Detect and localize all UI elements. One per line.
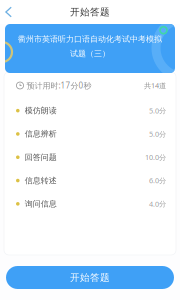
button[interactable]: Back bbox=[0, 1, 20, 22]
staticText: 10.0分 bbox=[145, 152, 166, 162]
staticText: 4.0分 bbox=[149, 199, 166, 209]
staticText: 预计用时:17分0秒 bbox=[27, 80, 92, 91]
staticText: 询问信息 bbox=[25, 199, 57, 209]
staticText: 共14道 bbox=[144, 81, 166, 90]
staticText: 5.0分 bbox=[149, 106, 166, 115]
button[interactable]: 询问信息 bbox=[4, 192, 176, 215]
button[interactable]: 信息辨析 bbox=[4, 122, 176, 146]
staticText: 模仿朗读 bbox=[25, 106, 57, 116]
button[interactable]: 信息转述 bbox=[4, 169, 176, 192]
staticText: 6.0分 bbox=[149, 176, 166, 185]
staticText: 信息辨析 bbox=[25, 129, 57, 139]
staticText: 开始答题 bbox=[70, 6, 110, 18]
button[interactable]: 回答问题 bbox=[4, 146, 176, 169]
staticText: 5.0分 bbox=[149, 129, 166, 139]
staticText: 开始答题 bbox=[70, 271, 110, 284]
staticText: 回答问题 bbox=[25, 152, 57, 162]
staticText: 试题（三） bbox=[70, 49, 110, 59]
staticText: 衢州市英语听力口语自动化考试中考模拟 bbox=[18, 34, 162, 44]
staticText: 信息转述 bbox=[25, 175, 57, 186]
button[interactable]: 开始答题 bbox=[6, 266, 174, 289]
button[interactable]: 模仿朗读 bbox=[4, 99, 176, 122]
